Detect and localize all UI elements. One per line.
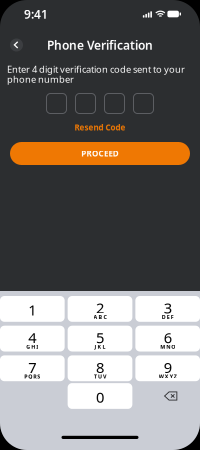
staticText: 1 (28, 300, 36, 320)
staticText: ABC (93, 313, 106, 321)
staticText: WXYZ (159, 373, 177, 380)
button[interactable]: 9 (135, 355, 200, 381)
button[interactable]: Back (10, 35, 23, 48)
staticText: TUV (94, 373, 106, 380)
button[interactable]: 0 (68, 383, 132, 409)
staticText: GHI (26, 343, 38, 350)
staticText: 4 (28, 328, 36, 347)
button[interactable]: PROCEED (10, 142, 190, 165)
staticText: 3 (164, 298, 172, 318)
staticText: MNO (160, 343, 175, 350)
button[interactable]: 5 (68, 326, 132, 351)
staticText: Enter 4 digit verification code sent to … (7, 63, 185, 75)
staticText: 5 (96, 328, 104, 347)
button[interactable]: 2 (68, 296, 132, 322)
staticText: 9:41 (24, 6, 48, 22)
staticText: Phone Verification (47, 37, 153, 53)
button[interactable]: 8 (68, 355, 132, 381)
button[interactable]: 3 (135, 296, 200, 322)
staticText: 9 (164, 357, 172, 377)
staticText: 0 (96, 387, 104, 407)
staticText: 2 (96, 298, 104, 318)
staticText: phone number (7, 73, 74, 85)
staticText: Resend Code (74, 122, 125, 133)
staticText: 8 (96, 357, 104, 377)
button[interactable]: Delete (135, 383, 200, 409)
button[interactable]: 7 (0, 355, 65, 381)
staticText: DEF (162, 313, 174, 321)
staticText: JKL (94, 343, 105, 350)
button[interactable]: 1 (0, 296, 65, 322)
button[interactable]: 4 (0, 326, 65, 351)
staticText: PROCEED (81, 148, 119, 159)
staticText: 6 (164, 328, 172, 347)
staticText: 7 (28, 357, 36, 377)
button[interactable]: Resend Code (40, 122, 160, 133)
staticText: PQRS (24, 373, 40, 380)
button[interactable]: 6 (135, 326, 200, 351)
